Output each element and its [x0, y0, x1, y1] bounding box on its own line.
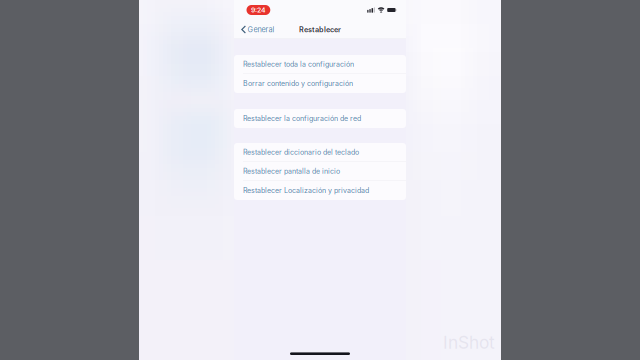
staticText: Restablecer la configuración de red: [243, 114, 361, 123]
staticText: Restablecer Localización y privacidad: [243, 186, 369, 195]
staticText: InShot: [443, 332, 495, 353]
button[interactable]: Restablecer pantalla de inicio: [234, 162, 406, 181]
staticText: Restablecer: [299, 25, 341, 34]
button[interactable]: Restablecer diccionario del teclado: [234, 143, 406, 162]
staticText: Restablecer diccionario del teclado: [243, 148, 359, 156]
staticText: Restablecer pantalla de inicio: [243, 167, 340, 175]
button[interactable]: Restablecer la configuración de red: [234, 109, 406, 128]
staticText: 9:24: [251, 6, 266, 14]
button[interactable]: General: [234, 21, 275, 38]
staticText: Restablecer toda la configuración: [243, 60, 354, 68]
button[interactable]: Restablecer toda la configuración: [234, 55, 406, 74]
staticText: General: [248, 25, 275, 34]
button[interactable]: Restablecer Localización y privacidad: [234, 181, 406, 200]
staticText: Borrar contenido y configuración: [243, 79, 353, 88]
button[interactable]: Borrar contenido y configuración: [234, 74, 406, 93]
